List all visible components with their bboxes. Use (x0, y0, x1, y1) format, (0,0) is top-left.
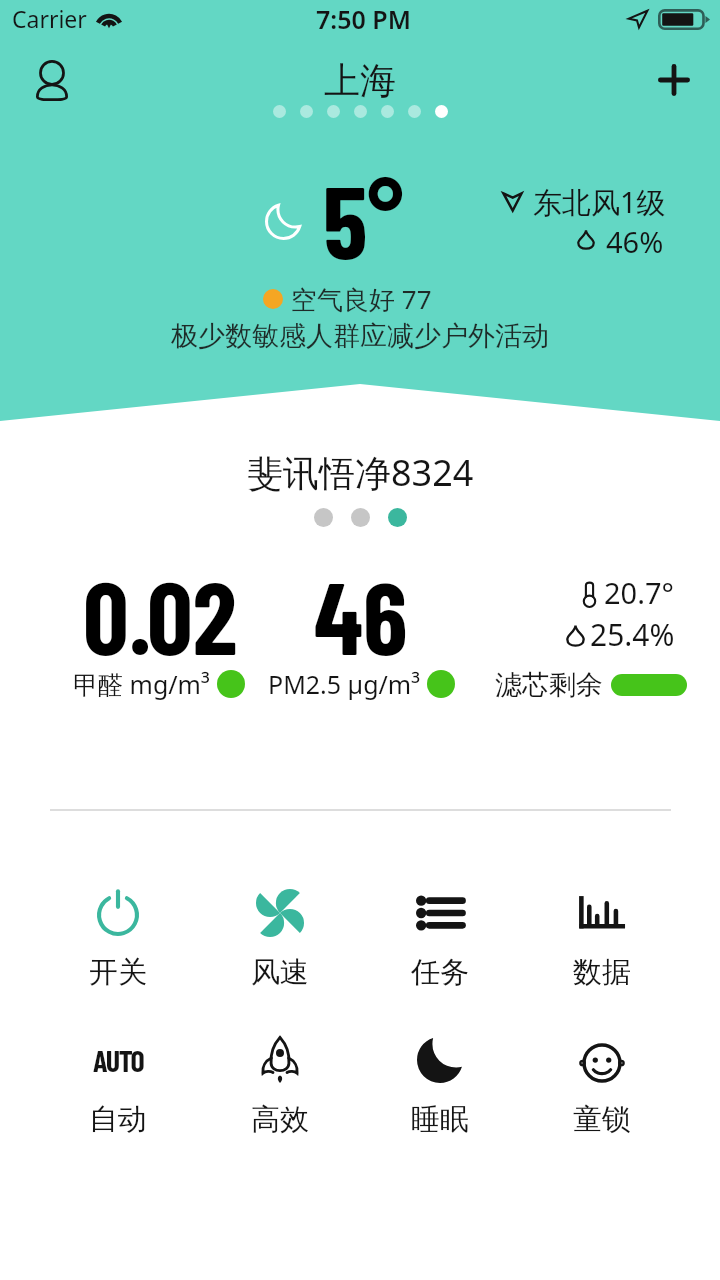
staticText: 7:50 PM (316, 2, 411, 36)
button[interactable]: 数据 (532, 881, 672, 1001)
staticText: 25.4% (590, 614, 675, 655)
staticText: 极少数敏感人群应减少户外活动 (171, 319, 549, 353)
staticText: 空气良好 77 (291, 281, 432, 317)
staticText: 斐讯悟净8324 (247, 448, 474, 497)
staticText: 开关 (89, 954, 147, 991)
staticText: 滤芯剩余 (495, 668, 603, 702)
staticText: PM2.5 µg/m³ (268, 667, 420, 701)
button[interactable]: 风速 (210, 881, 350, 1001)
button[interactable]: 童锁 (532, 1028, 672, 1148)
button[interactable]: 睡眠 (370, 1028, 510, 1148)
button[interactable]: 开关 (48, 881, 188, 1001)
button[interactable]: Account (16, 48, 88, 112)
staticText: 童锁 (573, 1101, 631, 1138)
staticText: 东北风1级 (533, 182, 666, 222)
staticText: 20.7° (604, 573, 674, 612)
staticText: 46 (314, 554, 408, 675)
staticText: 0.02 (83, 554, 237, 675)
staticText: 甲醛 mg/m³ (73, 667, 210, 701)
staticText: 高效 (251, 1101, 309, 1138)
staticText: Carrier (12, 3, 87, 34)
staticText: 数据 (573, 954, 631, 991)
staticText: 自动 (89, 1101, 147, 1138)
staticText: 上海 (324, 58, 396, 103)
button[interactable]: 高效 (210, 1028, 350, 1148)
staticText: 5° (323, 158, 404, 279)
button[interactable]: AUTO (48, 1028, 188, 1148)
button[interactable]: Add device (638, 48, 708, 112)
staticText: 风速 (251, 954, 309, 991)
staticText: 睡眠 (411, 1101, 469, 1138)
staticText: 46% (606, 222, 664, 261)
staticText: AUTO (93, 1042, 144, 1078)
button[interactable]: 任务 (370, 881, 510, 1001)
staticText: 任务 (411, 954, 469, 991)
